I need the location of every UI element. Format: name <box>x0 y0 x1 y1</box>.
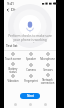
button[interactable]: Touch screen <box>4 51 22 62</box>
button[interactable]: Camera <box>22 62 39 73</box>
button[interactable]: Vibration <box>4 73 22 84</box>
staticText: Next <box>27 94 34 98</box>
button[interactable]: Home <box>26 100 34 108</box>
button[interactable]: Battery status <box>4 62 22 73</box>
staticText: Vibration <box>7 79 19 83</box>
staticText: Battery status <box>5 67 21 73</box>
staticText: Perform checks to make sure your phone i… <box>7 34 53 43</box>
button[interactable]: Fingerprint <box>22 73 39 84</box>
button[interactable]: Recents <box>11 100 19 108</box>
button[interactable]: Speaker <box>22 51 39 62</box>
button[interactable]: Network connection <box>39 73 56 84</box>
staticText: Speaker <box>26 57 36 61</box>
staticText: Fingerprint <box>24 79 38 83</box>
staticText: Network connection <box>40 78 55 84</box>
staticText: Camera <box>26 68 36 72</box>
staticText: Microphone <box>40 57 55 61</box>
staticText: Test list <box>6 44 18 48</box>
staticText: Touch screen <box>5 57 21 61</box>
staticText: Diagnostics <box>11 7 35 13</box>
button[interactable]: Sensors <box>39 62 56 73</box>
button[interactable]: Back <box>41 100 49 108</box>
staticText: 9:41 <box>7 1 14 6</box>
button[interactable]: Microphone <box>39 51 56 62</box>
button[interactable]: Next <box>20 93 40 99</box>
staticText: Sensors <box>43 68 53 72</box>
button[interactable]: Back <box>4 6 11 13</box>
